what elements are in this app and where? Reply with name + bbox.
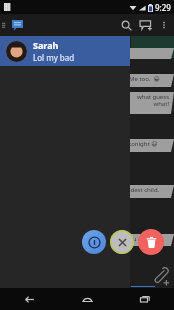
staticText: 9:29 xyxy=(155,2,171,13)
button[interactable]: Sarah xyxy=(0,36,130,66)
staticText: Sarah xyxy=(33,39,59,51)
button[interactable]: More options xyxy=(156,17,172,33)
staticText: ou don't xyxy=(129,235,169,243)
staticText: tonight 😃 xyxy=(129,140,169,148)
button[interactable]: Delete xyxy=(138,229,164,255)
button[interactable]: Attach xyxy=(150,266,170,286)
staticText: Me too. 😀 xyxy=(129,75,169,83)
button[interactable]: Hangouts xyxy=(10,18,25,33)
staticText: what guess what! xyxy=(129,93,169,108)
button[interactable]: Back xyxy=(0,288,58,310)
button[interactable]: Close xyxy=(110,230,134,254)
button[interactable]: New conversation xyxy=(136,15,156,35)
button[interactable]: Home xyxy=(58,288,116,310)
button[interactable]: Recents xyxy=(116,288,174,310)
staticText: ldest child. xyxy=(129,186,169,194)
staticText: Lol my bad xyxy=(33,52,75,63)
button[interactable]: Search xyxy=(116,15,136,35)
button[interactable]: Details xyxy=(82,230,106,254)
button[interactable]: Navigation xyxy=(0,20,10,30)
